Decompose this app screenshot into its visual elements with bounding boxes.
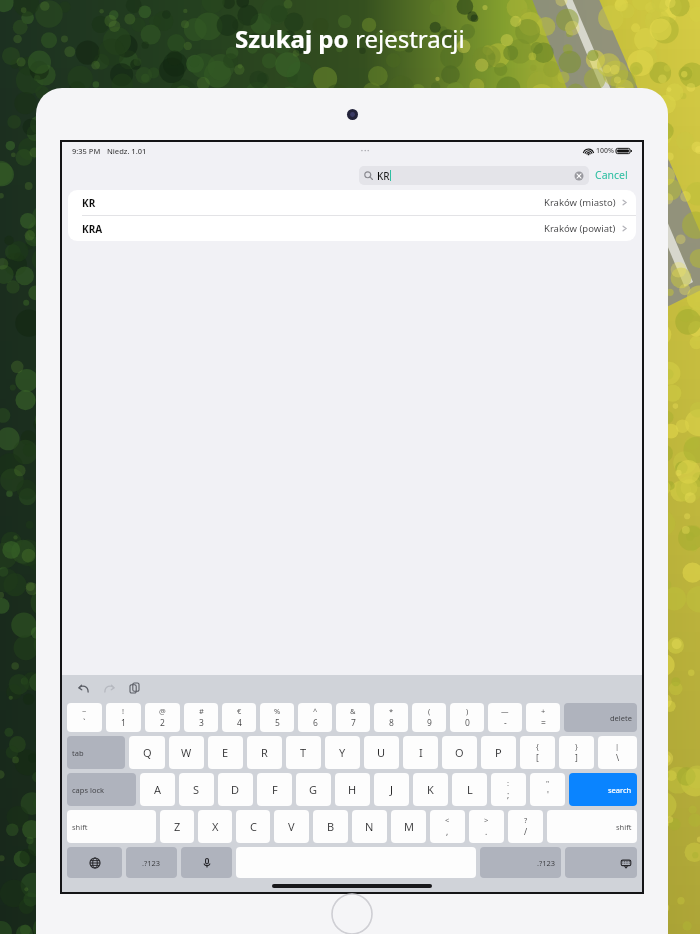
staticText: KR: [377, 169, 390, 183]
button[interactable]: ^: [298, 703, 332, 732]
button[interactable]: I: [403, 736, 438, 769]
button[interactable]: €: [222, 703, 256, 732]
button[interactable]: shift: [547, 810, 637, 843]
button[interactable]: D: [218, 773, 253, 806]
button[interactable]: !: [106, 703, 141, 732]
button[interactable]: J: [374, 773, 409, 806]
button[interactable]: M: [391, 810, 426, 843]
button[interactable]: ?: [508, 810, 543, 843]
button[interactable]: U: [364, 736, 399, 769]
button[interactable]: Cancel: [589, 165, 634, 185]
button[interactable]: O: [442, 736, 477, 769]
button[interactable]: KR: [68, 190, 636, 215]
button[interactable]: R: [247, 736, 282, 769]
button[interactable]: &: [336, 703, 370, 732]
button[interactable]: {: [520, 736, 555, 769]
staticText: search: [608, 785, 632, 795]
button[interactable]: E: [208, 736, 243, 769]
staticText: Y: [339, 745, 346, 760]
staticText: ~: [82, 706, 87, 716]
staticText: tab: [72, 748, 84, 758]
staticText: ": [546, 778, 550, 788]
button[interactable]: :: [491, 773, 526, 806]
staticText: Kraków (powiat): [544, 222, 616, 235]
button[interactable]: Paste: [126, 679, 144, 697]
button[interactable]: Clear text: [574, 171, 584, 181]
staticText: V: [288, 819, 295, 834]
button[interactable]: V: [274, 810, 309, 843]
button[interactable]: |: [598, 736, 637, 769]
button[interactable]: K: [413, 773, 448, 806]
button[interactable]: B: [313, 810, 348, 843]
staticText: R: [261, 745, 268, 760]
button[interactable]: (: [412, 703, 446, 732]
button[interactable]: G: [296, 773, 331, 806]
button[interactable]: W: [169, 736, 204, 769]
staticText: K: [427, 782, 434, 797]
button[interactable]: —: [488, 703, 522, 732]
staticText: ': [547, 789, 549, 801]
button[interactable]: +: [526, 703, 560, 732]
button[interactable]: L: [452, 773, 487, 806]
button[interactable]: #: [184, 703, 218, 732]
staticText: A: [154, 782, 162, 797]
button[interactable]: <: [430, 810, 465, 843]
staticText: 7: [351, 717, 356, 729]
button[interactable]: A: [140, 773, 175, 806]
button[interactable]: Hide keyboard: [565, 847, 637, 878]
staticText: ,: [446, 826, 449, 838]
button[interactable]: }: [559, 736, 594, 769]
button[interactable]: X: [198, 810, 232, 843]
button[interactable]: *: [374, 703, 408, 732]
staticText: 0: [465, 717, 470, 729]
staticText: H: [348, 782, 357, 797]
staticText: J: [390, 782, 394, 797]
staticText: N: [365, 819, 374, 834]
button[interactable]: KRA: [68, 216, 636, 241]
button[interactable]: N: [352, 810, 387, 843]
button[interactable]: Z: [160, 810, 194, 843]
button[interactable]: shift: [67, 810, 156, 843]
staticText: X: [212, 819, 219, 834]
button[interactable]: @: [145, 703, 180, 732]
staticText: caps lock: [72, 785, 105, 795]
button[interactable]: tab: [67, 736, 125, 769]
button[interactable]: delete: [564, 703, 637, 732]
staticText: &: [350, 706, 356, 716]
button[interactable]: %: [260, 703, 294, 732]
staticText: S: [193, 782, 200, 797]
button[interactable]: .?123: [126, 847, 177, 878]
button[interactable]: C: [236, 810, 270, 843]
staticText: >: [484, 815, 489, 825]
staticText: G: [309, 782, 318, 797]
button[interactable]: search: [569, 773, 637, 806]
button[interactable]: P: [481, 736, 516, 769]
staticText: KRA: [82, 222, 103, 236]
button[interactable]: Y: [325, 736, 360, 769]
staticText: C: [250, 819, 257, 834]
button[interactable]: ": [530, 773, 565, 806]
button[interactable]: >: [469, 810, 504, 843]
button[interactable]: F: [257, 773, 292, 806]
staticText: *: [389, 706, 394, 716]
button[interactable]: Q: [129, 736, 165, 769]
button[interactable]: T: [286, 736, 321, 769]
button[interactable]: ~: [67, 703, 102, 732]
button[interactable]: KR: [359, 166, 589, 185]
button[interactable]: ): [450, 703, 484, 732]
button[interactable]: .?123: [480, 847, 561, 878]
staticText: U: [377, 745, 386, 760]
button[interactable]: caps lock: [67, 773, 136, 806]
staticText: 1: [121, 717, 126, 729]
button[interactable]: Dictation: [181, 847, 232, 878]
staticText: /: [524, 826, 528, 838]
staticText: -: [504, 717, 507, 729]
button[interactable]: Undo: [74, 679, 92, 697]
staticText: W: [181, 745, 192, 760]
button[interactable]: Change keyboard: [67, 847, 122, 878]
staticText: B: [327, 819, 335, 834]
button[interactable]: S: [179, 773, 214, 806]
button[interactable]: H: [335, 773, 370, 806]
button[interactable]: Redo: [100, 679, 118, 697]
